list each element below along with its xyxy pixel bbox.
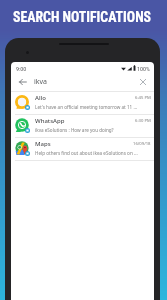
staticText: 6:30 PM bbox=[135, 118, 151, 124]
button[interactable]: Clear search bbox=[136, 75, 150, 89]
button[interactable]: Back bbox=[16, 75, 30, 89]
staticText: 16/09/18 bbox=[133, 141, 151, 147]
staticText: 9:00 bbox=[16, 65, 27, 72]
button[interactable]: WhatsApp bbox=[11, 115, 154, 138]
staticText: WhatsApp bbox=[35, 117, 65, 125]
staticText: ikva bbox=[34, 77, 48, 87]
staticText: Allo bbox=[35, 94, 46, 102]
button[interactable]: Maps bbox=[11, 138, 154, 161]
staticText: 6:45 PM bbox=[135, 95, 151, 101]
staticText: Help others find out about ikea eSolutio… bbox=[35, 150, 138, 156]
staticText: Let's have an official meeting tomorrow … bbox=[35, 104, 138, 110]
button[interactable]: Allo bbox=[11, 92, 154, 115]
staticText: Maps bbox=[35, 140, 51, 148]
staticText: ikva eSolutions : How are you doing? bbox=[35, 127, 114, 133]
staticText: 100% bbox=[137, 65, 150, 72]
staticText: SEARCH NOTIFICATIONS bbox=[13, 9, 152, 25]
